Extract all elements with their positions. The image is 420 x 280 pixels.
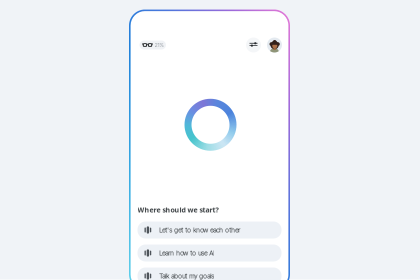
button[interactable]: Let's get to know each other: [137, 221, 281, 238]
staticText: Let's get to know each other: [159, 226, 240, 234]
button[interactable]: Profile: [267, 37, 282, 52]
staticText: 21%: [154, 42, 163, 48]
button[interactable]: Learn how to use AI: [137, 244, 281, 261]
button[interactable]: Talk about my goals: [137, 267, 281, 280]
staticText: Talk about my goals: [159, 272, 214, 280]
button[interactable]: Settings: [246, 37, 261, 52]
staticText: Learn how to use AI: [159, 249, 214, 257]
button[interactable]: 21%: [139, 40, 166, 49]
staticText: Where should we start?: [137, 205, 218, 214]
